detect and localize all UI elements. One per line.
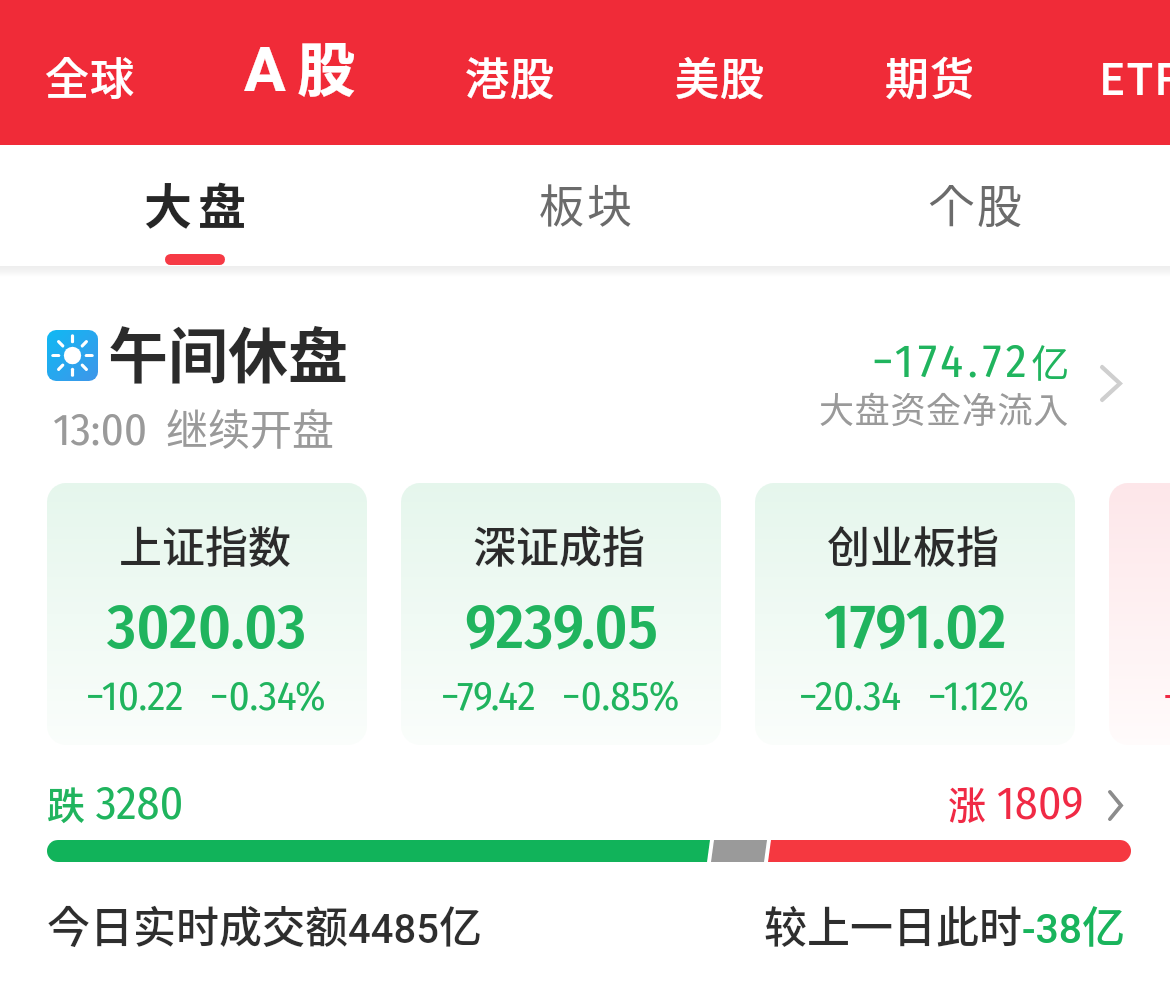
- staticText: −20.34: [799, 672, 902, 721]
- staticText: −0.85%: [562, 672, 680, 721]
- staticText: 港股: [465, 44, 555, 108]
- button[interactable]: 大盘资金净流入详情: [1082, 347, 1140, 419]
- button[interactable]: 美股: [615, 0, 825, 145]
- staticText: 深证成指: [473, 513, 645, 575]
- staticText: −0.34%: [210, 672, 326, 721]
- button[interactable]: 北证50: [1109, 483, 1170, 745]
- staticText: 板块: [539, 171, 636, 236]
- staticText: 较上一日此时-38亿: [764, 893, 1126, 955]
- staticText: 1791.02: [824, 589, 1007, 665]
- staticText: 大盘资金净流入: [819, 382, 1069, 433]
- staticText: 上证指数: [119, 513, 291, 575]
- staticText: 3020.03: [107, 589, 307, 665]
- button[interactable]: 涨跌家数详情: [1087, 775, 1144, 835]
- button[interactable]: 跌 3280: [0, 775, 1170, 835]
- button[interactable]: 个股: [780, 145, 1170, 273]
- button[interactable]: 全球: [0, 0, 195, 145]
- staticText: 跌 3280: [47, 775, 184, 831]
- button[interactable]: 午间休盘: [0, 285, 1170, 475]
- staticText: −10.22: [86, 672, 184, 721]
- staticText: 美股: [675, 44, 765, 108]
- button[interactable]: A 股: [195, 0, 405, 145]
- button[interactable]: 大盘: [0, 145, 390, 273]
- button[interactable]: 创业板指: [755, 483, 1075, 745]
- staticText: −174.72亿: [872, 333, 1070, 390]
- staticText: −1.12%: [928, 672, 1030, 721]
- staticText: 大盘: [144, 168, 253, 238]
- staticText: +5.08: [1163, 672, 1170, 721]
- button[interactable]: 港股: [405, 0, 615, 145]
- button[interactable]: 板块: [390, 145, 780, 273]
- button[interactable]: 期货: [825, 0, 1035, 145]
- staticText: 午间休盘: [108, 308, 348, 395]
- button[interactable]: 上证指数: [47, 483, 367, 745]
- staticText: 全球: [45, 44, 135, 108]
- staticText: 今日实时成交额4485亿: [47, 893, 482, 955]
- staticText: −79.42: [441, 672, 536, 721]
- button[interactable]: 深证成指: [401, 483, 721, 745]
- staticText: ETF: [1099, 44, 1170, 108]
- staticText: 创业板指: [827, 513, 999, 575]
- staticText: 13:00 继续开盘: [53, 396, 335, 457]
- staticText: A 股: [244, 24, 356, 108]
- staticText: 期货: [885, 44, 975, 108]
- staticText: 涨 1809: [948, 775, 1084, 831]
- button[interactable]: ETF: [1035, 0, 1170, 145]
- staticText: 个股: [929, 171, 1026, 236]
- staticText: 9239.05: [465, 589, 658, 665]
